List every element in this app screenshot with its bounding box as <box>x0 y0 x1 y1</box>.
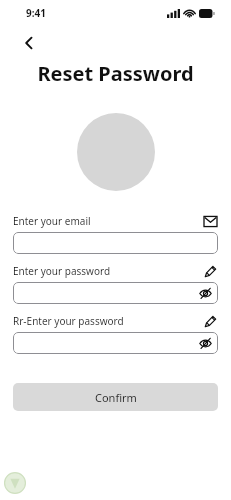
button[interactable]: Show password <box>13 282 218 304</box>
button[interactable]: Edit <box>202 313 218 329</box>
button[interactable]: Profile photo <box>77 113 155 191</box>
staticText: Rr-Enter your password <box>13 314 124 328</box>
button[interactable]: Email <box>202 213 218 229</box>
staticText: Enter your email <box>13 214 91 228</box>
button[interactable]: Show password <box>198 286 213 301</box>
staticText: Reset Password <box>37 60 194 87</box>
button[interactable]: Show password <box>13 332 218 354</box>
staticText: 9:41 <box>26 6 46 20</box>
other: Logo <box>4 472 26 494</box>
button[interactable]: Confirm <box>13 383 218 411</box>
button[interactable]: Show password <box>198 336 213 351</box>
button[interactable]: Back <box>18 32 40 54</box>
staticText: Confirm <box>95 390 137 405</box>
staticText: Enter your password <box>13 264 111 278</box>
button[interactable]: Edit <box>202 263 218 279</box>
button[interactable] <box>13 232 218 254</box>
